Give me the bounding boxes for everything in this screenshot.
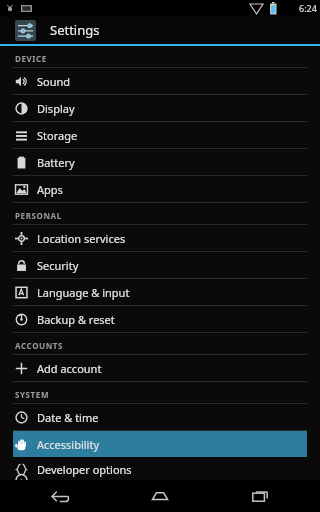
staticText: Date & time — [37, 410, 99, 425]
button[interactable]: Location services — [0, 225, 320, 251]
button[interactable]: Storage — [0, 122, 320, 148]
button[interactable]: Developer options — [0, 458, 320, 480]
button[interactable]: Add account — [0, 355, 320, 381]
button[interactable]: Apps — [0, 176, 320, 202]
button[interactable]: Display — [0, 95, 320, 121]
staticText: Battery — [37, 155, 75, 170]
staticText: Sound — [37, 74, 71, 89]
button[interactable]: Backup & reset — [0, 306, 320, 332]
staticText: Developer options — [37, 462, 132, 477]
button[interactable]: Sound — [0, 68, 320, 94]
staticText: Apps — [37, 182, 63, 197]
button[interactable]: Battery — [0, 149, 320, 175]
button[interactable]: Date & time — [0, 404, 320, 430]
staticText: Add account — [37, 361, 102, 376]
staticText: ACCOUNTS — [15, 340, 64, 351]
staticText: PERSONAL — [15, 210, 62, 221]
button[interactable]: Home — [120, 480, 200, 512]
button[interactable]: Security — [0, 252, 320, 278]
button[interactable]: Language & input — [0, 279, 320, 305]
staticText: Storage — [37, 128, 78, 143]
button[interactable]: Accessibility — [13, 431, 307, 457]
button[interactable]: Settings — [0, 16, 320, 44]
staticText: 6:24 — [299, 2, 317, 14]
staticText: DEVICE — [15, 53, 47, 64]
button[interactable]: Back — [20, 480, 100, 512]
staticText: SYSTEM — [15, 389, 50, 400]
staticText: Security — [37, 258, 79, 273]
staticText: Backup & reset — [37, 312, 115, 327]
button[interactable]: Recent apps — [220, 480, 300, 512]
staticText: Display — [37, 101, 75, 116]
staticText: Location services — [37, 231, 126, 246]
staticText: Settings — [50, 21, 100, 39]
staticText: Language & input — [37, 285, 130, 300]
staticText: Accessibility — [37, 437, 100, 452]
